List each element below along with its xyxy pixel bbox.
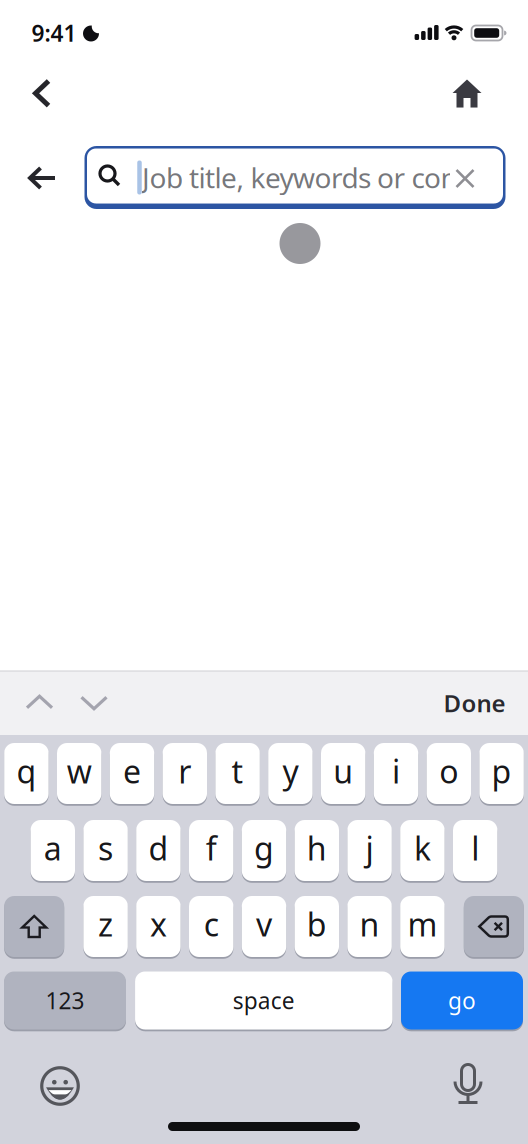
button[interactable]: c: [189, 896, 233, 957]
button[interactable]: Home: [445, 71, 489, 115]
button[interactable]: 123: [4, 971, 126, 1029]
button[interactable]: d: [136, 820, 181, 881]
button[interactable]: q: [4, 743, 49, 804]
staticText: k: [414, 827, 431, 869]
button[interactable]: w: [57, 743, 101, 804]
button[interactable]: e: [110, 743, 154, 804]
button[interactable]: space: [135, 971, 393, 1029]
button[interactable]: v: [242, 896, 286, 957]
staticText: m: [407, 903, 437, 945]
staticText: 9:41: [31, 18, 76, 48]
button[interactable]: r: [163, 743, 207, 804]
button[interactable]: m: [400, 896, 445, 957]
staticText: a: [44, 827, 62, 869]
staticText: Job title, keywords or compa: [142, 159, 498, 196]
staticText: i: [392, 750, 400, 792]
button[interactable]: n: [347, 896, 392, 957]
staticText: e: [123, 750, 141, 792]
staticText: c: [204, 903, 219, 945]
button[interactable]: f: [189, 820, 233, 881]
staticText: o: [439, 750, 458, 792]
staticText: p: [492, 750, 512, 792]
button[interactable]: p: [479, 743, 524, 804]
button[interactable]: y: [268, 743, 313, 804]
staticText: j: [366, 827, 374, 869]
button[interactable]: o: [427, 743, 471, 804]
button[interactable]: go: [401, 971, 523, 1029]
button[interactable]: s: [83, 820, 128, 881]
button[interactable]: h: [295, 820, 339, 881]
staticText: r: [178, 750, 191, 792]
button[interactable]: g: [242, 820, 286, 881]
button[interactable]: Back: [20, 156, 64, 200]
button[interactable]: l: [453, 820, 497, 881]
button[interactable]: Delete: [464, 896, 524, 957]
button[interactable]: Job title, keywords or compa: [84, 146, 505, 209]
staticText: q: [16, 750, 36, 792]
button[interactable]: a: [31, 820, 75, 881]
button[interactable]: k: [400, 820, 445, 881]
staticText: h: [307, 827, 327, 869]
staticText: v: [256, 903, 272, 945]
staticText: s: [98, 827, 113, 869]
staticText: x: [150, 903, 167, 945]
button[interactable]: Dictation: [446, 1062, 490, 1106]
staticText: y: [282, 750, 298, 792]
button[interactable]: Back: [20, 71, 64, 115]
button[interactable]: Previous field: [17, 680, 61, 724]
button[interactable]: Done: [365, 687, 505, 719]
staticText: 123: [45, 985, 84, 1015]
staticText: f: [206, 827, 217, 869]
staticText: b: [307, 903, 327, 945]
button[interactable]: Emoji: [38, 1064, 82, 1108]
button[interactable]: b: [295, 896, 339, 957]
staticText: n: [360, 903, 380, 945]
staticText: d: [148, 827, 168, 869]
button[interactable]: Next field: [72, 681, 116, 725]
staticText: t: [232, 750, 244, 792]
button[interactable]: j: [347, 820, 392, 881]
button[interactable]: t: [215, 743, 260, 804]
staticText: u: [333, 750, 353, 792]
staticText: go: [448, 985, 476, 1015]
staticText: Done: [443, 687, 505, 719]
staticText: space: [233, 985, 295, 1015]
button[interactable]: Shift: [4, 896, 64, 957]
button[interactable]: i: [374, 743, 418, 804]
button[interactable]: x: [136, 896, 181, 957]
staticText: z: [98, 903, 113, 945]
button[interactable]: u: [321, 743, 365, 804]
button[interactable]: Clear search text: [445, 158, 485, 198]
staticText: g: [254, 827, 274, 869]
staticText: l: [471, 827, 479, 869]
button[interactable]: z: [83, 896, 128, 957]
staticText: w: [67, 750, 92, 792]
